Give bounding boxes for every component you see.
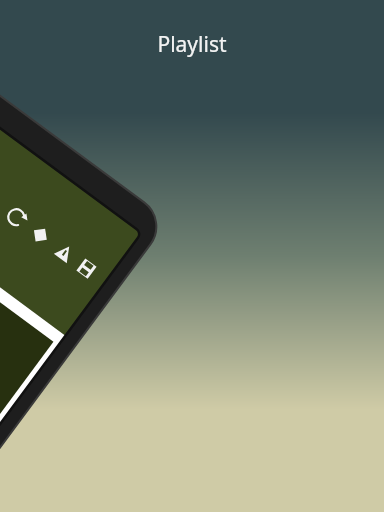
staticText: Playlist: [42, 30, 342, 59]
button[interactable]: Video Rotate app preview: [0, 0, 384, 512]
